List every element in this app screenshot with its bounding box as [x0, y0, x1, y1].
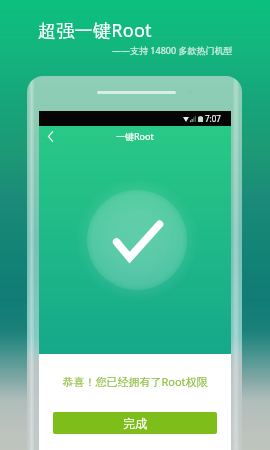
staticText: ——支持 14800 多款热门机型 — [112, 44, 233, 56]
staticText: 一键Root — [116, 130, 154, 142]
staticText: 7:07 — [205, 113, 221, 124]
button[interactable]: 完成 — [53, 412, 217, 434]
button[interactable]: Back — [39, 126, 61, 147]
staticText: 完成 — [123, 416, 147, 431]
staticText: 恭喜！您已经拥有了Root权限 — [62, 374, 208, 389]
staticText: 超强一键Root — [38, 18, 152, 43]
